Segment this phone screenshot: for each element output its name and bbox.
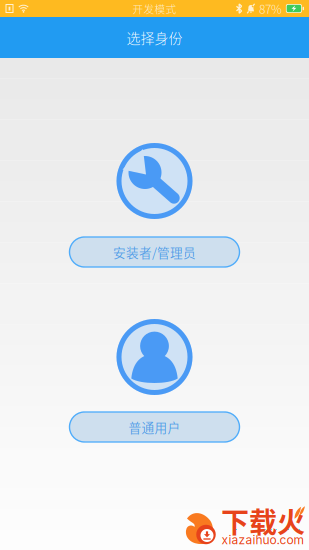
button[interactable]: 普通用户	[69, 412, 239, 442]
staticText: 火	[277, 500, 305, 541]
staticText: xiazaihuo.com	[221, 533, 304, 547]
staticText: 87%	[259, 0, 282, 17]
staticText: 普通用户	[128, 418, 180, 436]
button[interactable]: 安装者/管理员	[69, 237, 239, 267]
staticText: 开发模式	[132, 1, 176, 16]
staticText: 安装者/管理员	[113, 243, 196, 261]
staticText: 下载	[221, 500, 277, 541]
staticText: 选择身份	[126, 27, 182, 48]
